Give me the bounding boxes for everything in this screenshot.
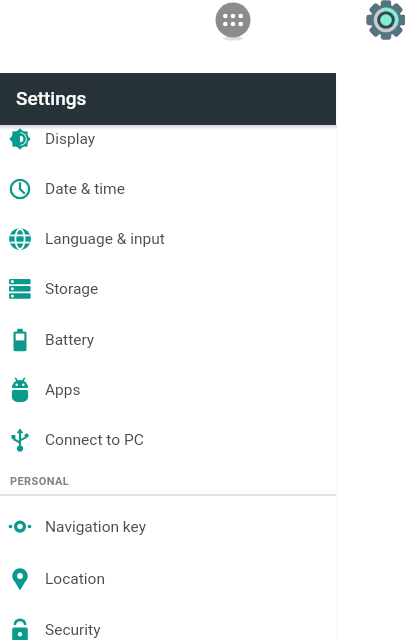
staticText: Language & input bbox=[45, 230, 165, 248]
button[interactable]: Security bbox=[0, 605, 336, 640]
staticText: Settings bbox=[16, 87, 87, 109]
staticText: Storage bbox=[45, 280, 99, 298]
staticText: Connect to PC bbox=[45, 431, 144, 449]
staticText: Battery bbox=[45, 331, 95, 349]
staticText: Security bbox=[45, 621, 101, 639]
button[interactable]: Storage bbox=[0, 264, 336, 314]
button[interactable]: Connect to PC bbox=[0, 415, 336, 465]
staticText: Date & time bbox=[45, 180, 125, 198]
button[interactable]: Location bbox=[0, 554, 336, 604]
staticText: Apps bbox=[45, 381, 81, 399]
button[interactable] bbox=[214, 1, 252, 39]
staticText: Location bbox=[45, 570, 105, 588]
staticText: Display bbox=[45, 130, 96, 148]
button[interactable]: Navigation key bbox=[0, 502, 336, 552]
button[interactable]: Apps bbox=[0, 365, 336, 415]
button[interactable]: Language & input bbox=[0, 214, 336, 264]
button[interactable]: Battery bbox=[0, 315, 336, 365]
button[interactable]: Display bbox=[0, 114, 336, 164]
button[interactable] bbox=[366, 0, 405, 40]
button[interactable]: Date & time bbox=[0, 164, 336, 214]
staticText: PERSONAL bbox=[10, 475, 70, 488]
staticText: Navigation key bbox=[45, 518, 147, 536]
button[interactable]: Settings bbox=[0, 73, 336, 125]
